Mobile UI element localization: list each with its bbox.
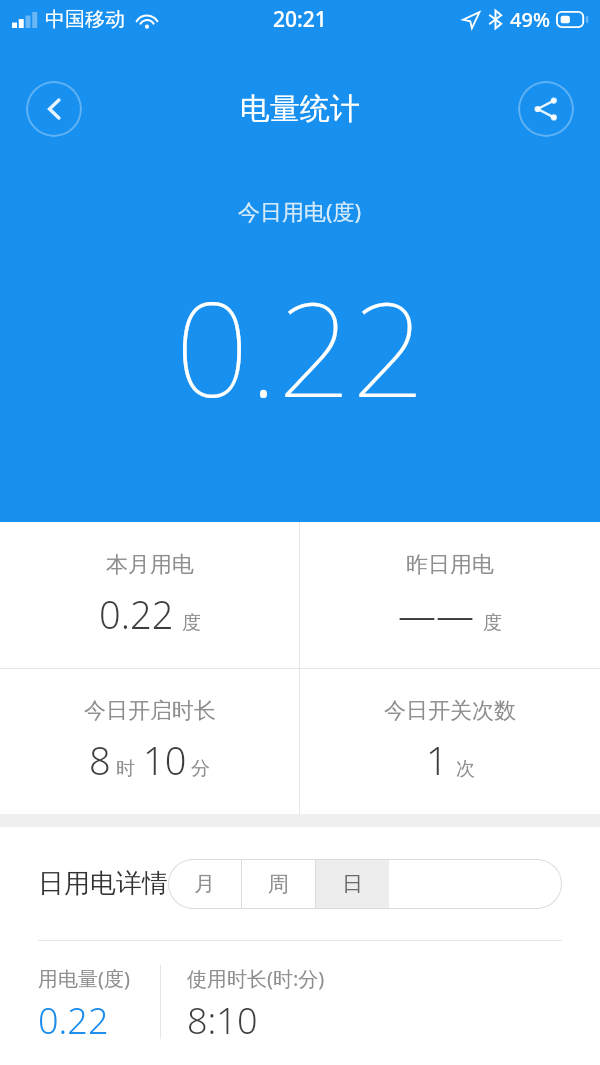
staticText: 周 bbox=[268, 871, 289, 897]
staticText: 今日开启时长 bbox=[84, 697, 216, 725]
button[interactable]: Share bbox=[518, 81, 574, 137]
staticText: 度 bbox=[483, 611, 502, 635]
staticText: 8:10 bbox=[187, 996, 258, 1045]
staticText: 8 bbox=[89, 734, 111, 786]
staticText: 分 bbox=[191, 757, 210, 781]
button[interactable]: 日 bbox=[316, 859, 389, 909]
staticText: 中国移动 bbox=[45, 7, 125, 32]
staticText: 20:21 bbox=[273, 5, 327, 34]
button[interactable]: 昨日用电 bbox=[300, 522, 600, 668]
button[interactable]: Back bbox=[26, 81, 82, 137]
staticText: 1 bbox=[426, 734, 448, 786]
staticText: —— bbox=[398, 588, 475, 640]
staticText: 49% bbox=[510, 6, 550, 33]
staticText: 日 bbox=[342, 871, 363, 897]
staticText: 昨日用电 bbox=[406, 551, 494, 579]
staticText: 日用电详情 bbox=[38, 867, 168, 900]
button[interactable]: 月 bbox=[168, 859, 241, 909]
staticText: 度 bbox=[182, 611, 201, 635]
button[interactable]: 今日开关次数 bbox=[300, 669, 600, 814]
button[interactable]: 周 bbox=[242, 859, 315, 909]
staticText: 10 bbox=[143, 734, 187, 786]
staticText: 时 bbox=[116, 757, 135, 781]
staticText: 使用时长(时:分) bbox=[187, 965, 325, 992]
staticText: 0.22 bbox=[175, 258, 426, 435]
staticText: 0.22 bbox=[99, 588, 174, 640]
staticText: 电量统计 bbox=[240, 90, 360, 128]
staticText: 用电量(度) bbox=[38, 965, 130, 992]
staticText: 月 bbox=[194, 871, 215, 897]
staticText: 今日用电(度) bbox=[238, 196, 362, 226]
button[interactable]: 本月用电 bbox=[0, 522, 299, 668]
staticText: 今日开关次数 bbox=[384, 697, 516, 725]
button[interactable]: 今日开启时长 bbox=[0, 669, 299, 814]
staticText: 本月用电 bbox=[106, 551, 194, 579]
staticText: 0.22 bbox=[38, 996, 109, 1045]
staticText: 次 bbox=[456, 757, 475, 781]
